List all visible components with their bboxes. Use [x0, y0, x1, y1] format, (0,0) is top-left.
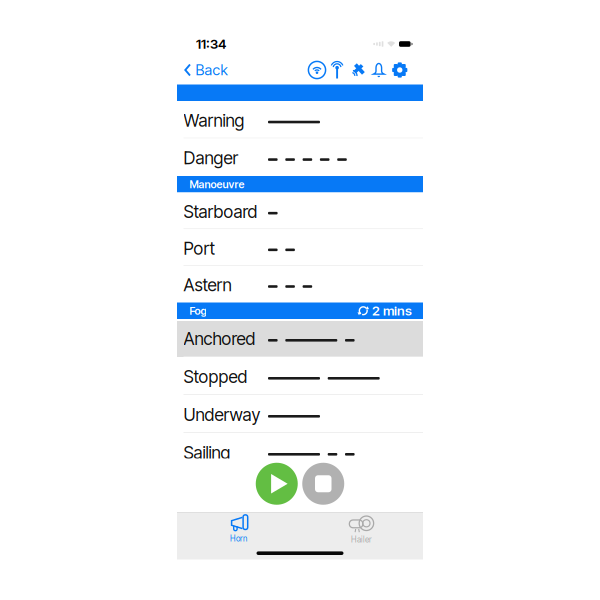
button[interactable]: GPS	[350, 61, 366, 78]
staticText: Back	[195, 61, 227, 79]
staticText: Sailing	[183, 443, 230, 463]
staticText: Danger	[183, 148, 238, 168]
staticText: 11:34	[196, 36, 226, 52]
button[interactable]: Settings	[392, 62, 407, 78]
button[interactable]: Back	[177, 61, 227, 79]
button[interactable]: Play	[256, 463, 298, 505]
staticText: Stopped	[183, 367, 247, 387]
staticText: Port	[183, 238, 214, 258]
staticText: Underway	[183, 405, 260, 425]
button[interactable]: Hailer	[300, 512, 423, 546]
button[interactable]: Astern	[177, 266, 423, 302]
staticText: Anchored	[183, 329, 255, 349]
staticText: Starboard	[183, 201, 257, 222]
button[interactable]: Repeat every 2 minutes	[357, 303, 412, 319]
staticText: Hailer	[351, 535, 372, 544]
button[interactable]: Danger	[177, 138, 423, 176]
button[interactable]: Sailing	[177, 433, 423, 471]
button[interactable]: Alerts	[373, 62, 385, 77]
staticText: Astern	[183, 275, 231, 295]
staticText: Horn	[230, 534, 247, 543]
button[interactable]: Port	[177, 229, 423, 266]
button[interactable]: Wi-Fi	[308, 61, 326, 79]
button[interactable]: Anchored	[177, 319, 423, 357]
button[interactable]: Horn	[177, 512, 300, 546]
staticText: 2 mins	[372, 303, 412, 319]
button[interactable]: Antenna	[331, 61, 344, 78]
staticText: Fog	[189, 304, 206, 317]
staticText: Manoeuvre	[189, 178, 244, 191]
staticText: Warning	[183, 110, 244, 131]
button[interactable]: Stop	[302, 463, 344, 505]
button[interactable]: Stopped	[177, 357, 423, 395]
button[interactable]: Starboard	[177, 192, 423, 229]
button[interactable]: Warning	[177, 101, 423, 138]
button[interactable]: Underway	[177, 395, 423, 433]
